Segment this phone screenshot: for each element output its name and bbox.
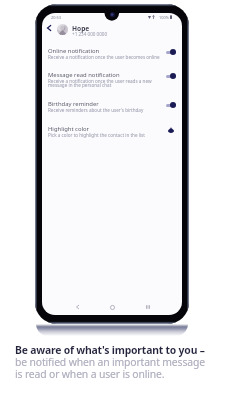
- button[interactable]: Back: [69, 299, 85, 315]
- button[interactable]: Back: [42, 21, 56, 35]
- staticText: be notified when an important message is…: [15, 355, 205, 381]
- button[interactable]: Highlight color: [42, 125, 182, 139]
- staticText: +1 234 000 0000: [72, 31, 108, 37]
- staticText: Online notification: [48, 47, 100, 55]
- staticText: 20:53: [51, 15, 61, 20]
- staticText: Birthday reminder: [48, 100, 99, 108]
- staticText: Be aware of what's important to you –: [15, 343, 205, 357]
- button[interactable]: Home: [104, 299, 120, 315]
- button[interactable]: Recent apps: [140, 299, 156, 315]
- staticText: Highlight color: [48, 125, 90, 133]
- staticText: Receive a notification once the user bec…: [48, 54, 160, 60]
- staticText: 100%: [159, 15, 169, 20]
- button[interactable]: Online notification: [42, 47, 182, 61]
- staticText: Receive a notification once the user rea…: [48, 78, 152, 89]
- staticText: Pick a color to highlight the contact in…: [48, 132, 145, 138]
- button[interactable]: Birthday reminder: [42, 100, 182, 114]
- button[interactable]: Contact avatar: [57, 24, 68, 35]
- button[interactable]: Message read notification: [42, 71, 182, 89]
- staticText: Hope: [72, 24, 90, 33]
- staticText: Message read notification: [48, 71, 120, 79]
- staticText: Receive reminders about the user's birth…: [48, 107, 144, 113]
